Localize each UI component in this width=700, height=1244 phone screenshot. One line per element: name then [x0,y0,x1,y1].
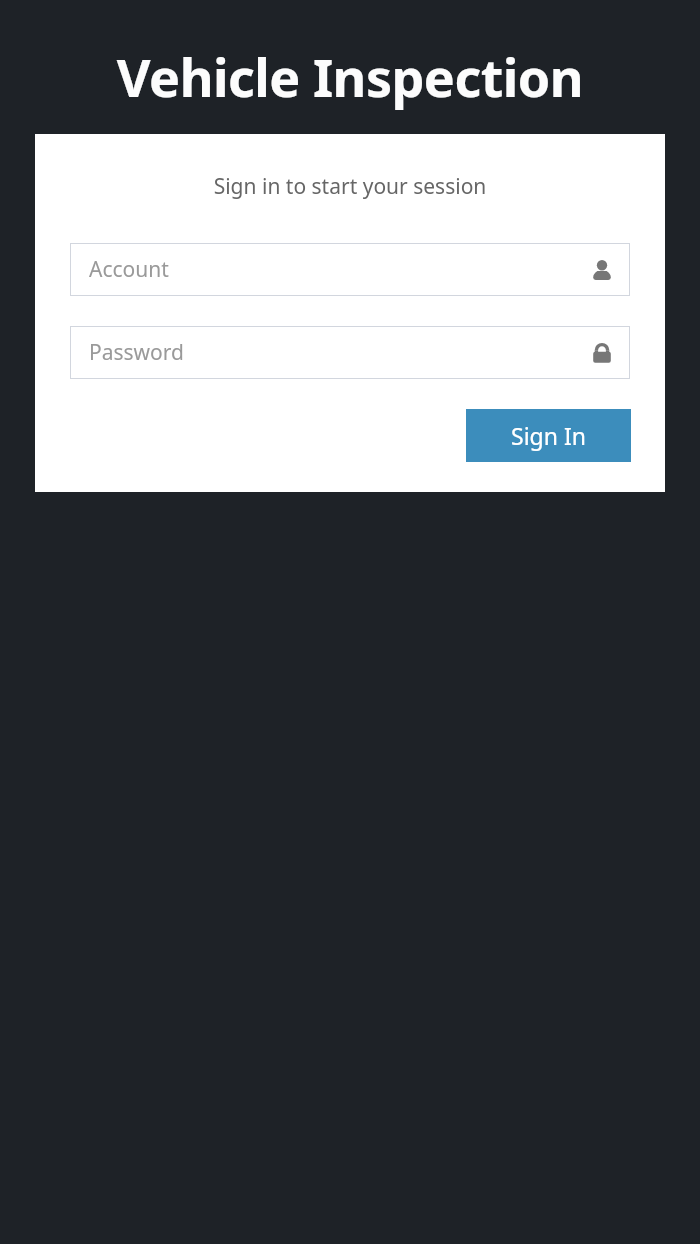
button[interactable]: Account [70,243,630,296]
staticText: Password [89,338,184,367]
staticText: Sign In [511,420,586,451]
staticText: Sign in to start your session [35,172,665,201]
staticText: Account [89,255,169,284]
button[interactable]: Password [70,326,630,379]
staticText: Vehicle Inspection [0,41,700,112]
button[interactable]: Sign In [466,409,631,462]
